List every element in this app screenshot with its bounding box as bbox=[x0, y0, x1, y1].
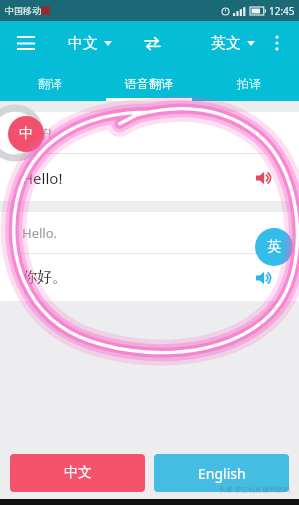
staticText: 12:45 bbox=[269, 4, 295, 18]
staticText: 头条 @三仙直播间数码 bbox=[219, 485, 291, 495]
button[interactable]: 英文 bbox=[211, 34, 255, 53]
button[interactable]: 翻译 bbox=[0, 65, 99, 101]
button[interactable]: 中文 bbox=[68, 34, 112, 53]
staticText: 语音翻译 bbox=[125, 76, 173, 91]
button[interactable]: Play audio bbox=[249, 263, 279, 293]
button[interactable]: Hello. bbox=[0, 212, 299, 301]
staticText: 翻译 bbox=[38, 76, 62, 91]
button[interactable]: 你好! bbox=[0, 112, 299, 201]
staticText: 你好! bbox=[22, 124, 52, 142]
staticText: 中文 bbox=[64, 464, 92, 482]
button[interactable]: 拍译 bbox=[199, 65, 299, 101]
button[interactable]: 中 bbox=[8, 116, 44, 152]
button[interactable]: 语音翻译 bbox=[99, 65, 199, 101]
staticText: 拍译 bbox=[237, 76, 261, 91]
button[interactable]: English bbox=[154, 454, 289, 492]
staticText: Hello! bbox=[22, 168, 63, 188]
button[interactable]: Swap languages bbox=[137, 28, 167, 58]
staticText: English bbox=[198, 464, 246, 483]
staticText: Hello. bbox=[22, 224, 58, 242]
button[interactable]: Menu bbox=[8, 25, 44, 61]
button[interactable]: 英 bbox=[255, 228, 293, 266]
staticText: 英 bbox=[267, 238, 281, 256]
staticText: 你好。 bbox=[22, 268, 67, 287]
button[interactable]: More options bbox=[261, 27, 293, 59]
staticText: 英文 bbox=[211, 34, 241, 53]
button[interactable]: Play audio bbox=[249, 163, 279, 193]
button[interactable]: 中文 bbox=[10, 454, 145, 492]
staticText: 中文 bbox=[68, 34, 98, 53]
staticText: 中 bbox=[19, 125, 33, 143]
staticText: 中国移动 bbox=[5, 5, 41, 16]
